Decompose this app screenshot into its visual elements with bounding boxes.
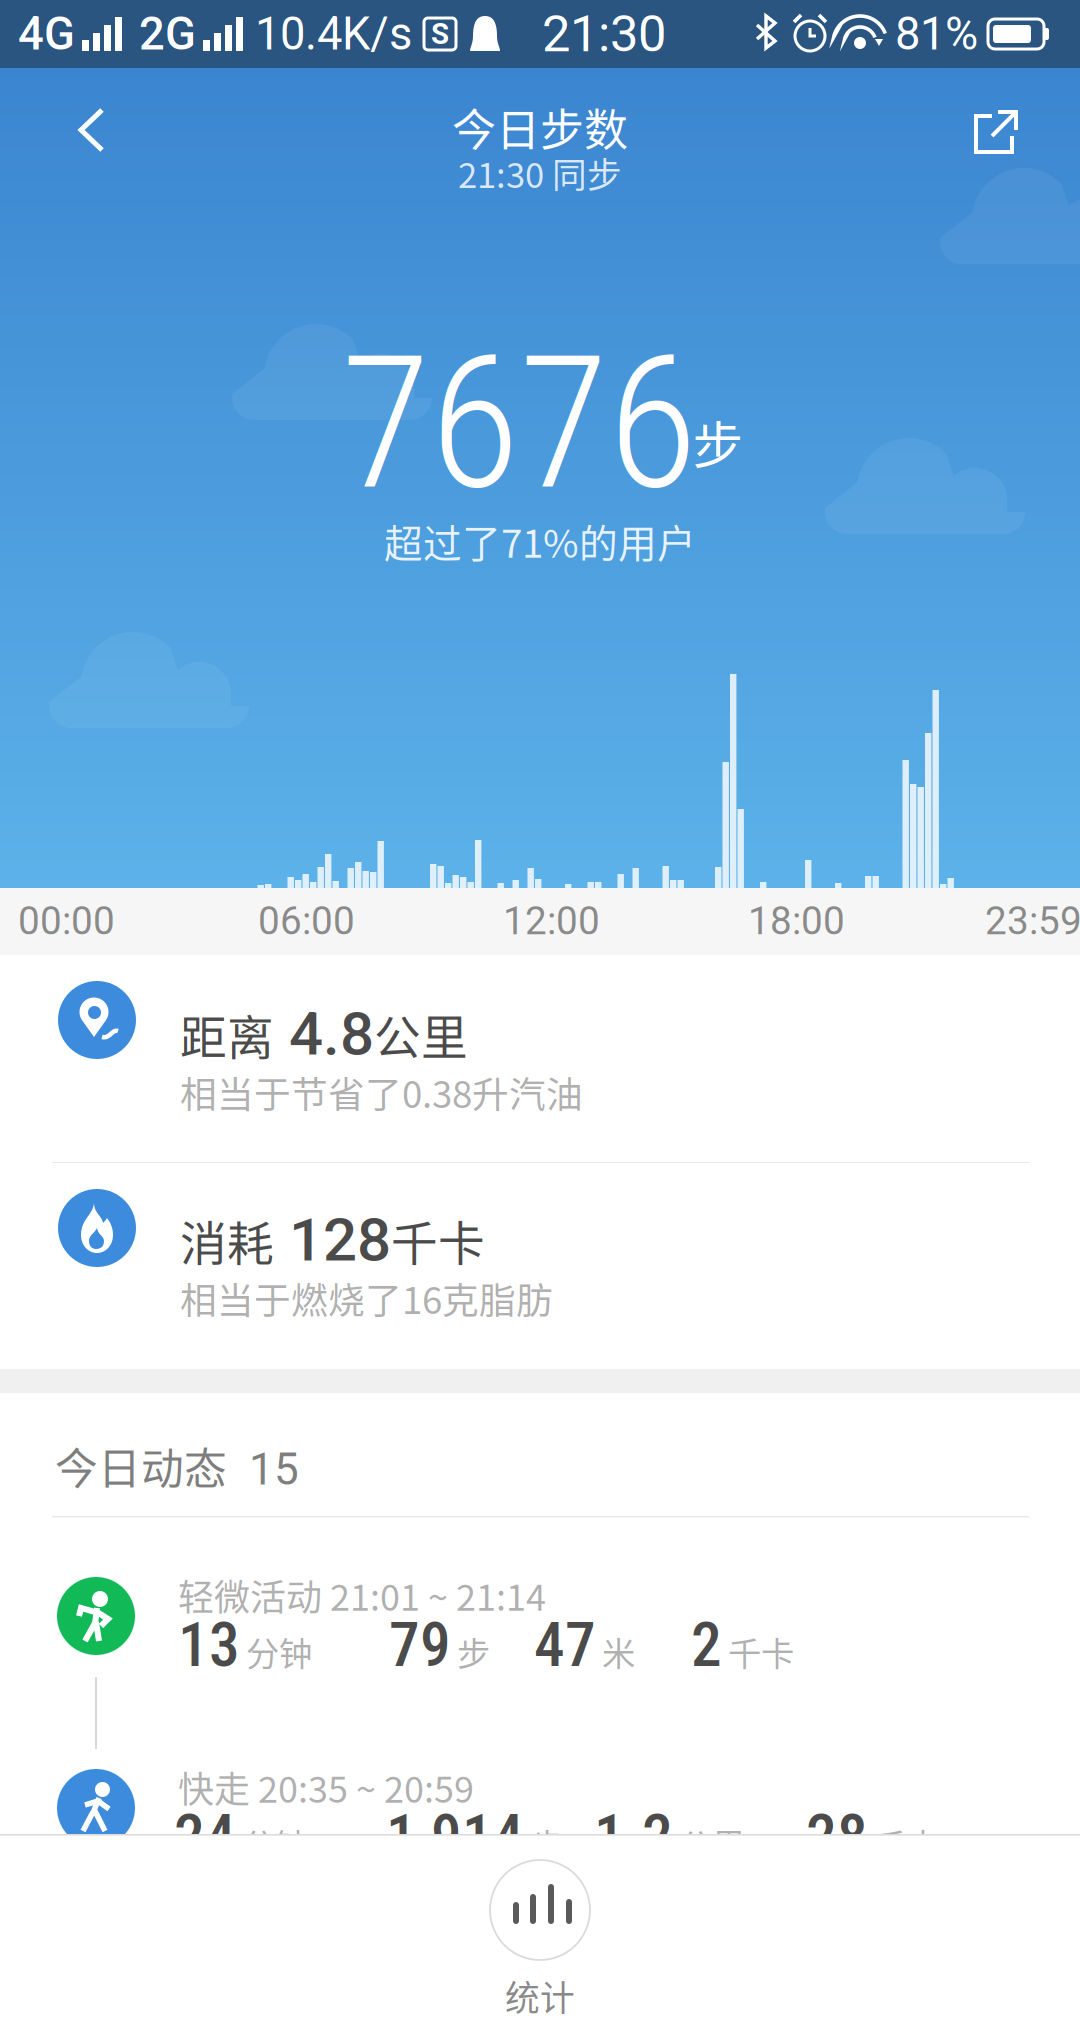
button[interactable]: 轻微活动 21:01 ~ 21:14: [0, 1577, 1080, 1777]
button[interactable]: 消耗: [0, 1163, 1080, 1369]
staticText: 公里: [679, 1819, 745, 1868]
staticText: 21:30: [542, 4, 666, 64]
staticText: 分钟: [246, 1627, 312, 1676]
staticText: 千卡: [728, 1627, 794, 1676]
staticText: 步: [692, 405, 743, 479]
staticText: 步: [457, 1627, 490, 1676]
staticText: 公里: [374, 1000, 468, 1068]
staticText: 相当于燃烧了16克脂肪: [180, 1271, 553, 1325]
staticText: 快走 20:35 ~ 20:59: [178, 1761, 474, 1813]
staticText: 消耗: [180, 1206, 274, 1274]
staticText: 今日动态: [55, 1435, 227, 1497]
staticText: 79: [389, 1609, 451, 1681]
staticText: 1.2: [594, 1801, 673, 1873]
staticText: 28: [806, 1801, 868, 1873]
staticText: 米: [602, 1627, 635, 1676]
button[interactable]: 快走 20:35 ~ 20:59: [0, 1769, 1080, 1909]
staticText: 4G: [18, 7, 75, 60]
staticText: 10.4K/s: [255, 7, 412, 60]
staticText: 轻微活动 21:01 ~ 21:14: [178, 1569, 546, 1621]
staticText: 超过了71%的用户: [384, 513, 696, 569]
staticText: 距离: [180, 1000, 274, 1068]
staticText: 06:00: [258, 898, 355, 944]
button[interactable]: 统计: [0, 1834, 1080, 2034]
staticText: 统计: [505, 1971, 575, 2021]
staticText: S: [431, 17, 449, 51]
staticText: 15: [227, 1444, 299, 1495]
staticText: 12:00: [503, 898, 600, 944]
staticText: 7676: [341, 315, 697, 531]
staticText: 47: [534, 1609, 596, 1681]
button[interactable]: Share: [944, 90, 1054, 174]
staticText: 00:00: [18, 898, 115, 944]
staticText: 今日步数: [452, 95, 628, 159]
staticText: 千卡: [874, 1819, 940, 1868]
staticText: 128: [274, 1205, 391, 1275]
staticText: 分钟: [242, 1819, 308, 1868]
staticText: 4.8: [274, 999, 374, 1069]
staticText: 2G: [139, 7, 196, 60]
staticText: 步: [530, 1819, 563, 1868]
staticText: 21:30 同步: [458, 148, 622, 198]
staticText: 18:00: [748, 898, 845, 944]
staticText: 23:59: [985, 898, 1080, 944]
staticText: 相当于节省了0.38升汽油: [180, 1065, 583, 1119]
staticText: 1,914: [386, 1801, 524, 1873]
button[interactable]: 距离: [0, 955, 1080, 1163]
button[interactable]: Back: [36, 88, 146, 172]
staticText: 13: [178, 1609, 240, 1681]
staticText: 千卡: [391, 1206, 485, 1274]
staticText: 24: [174, 1801, 236, 1873]
staticText: 2: [691, 1609, 722, 1681]
staticText: 81%: [895, 7, 978, 60]
